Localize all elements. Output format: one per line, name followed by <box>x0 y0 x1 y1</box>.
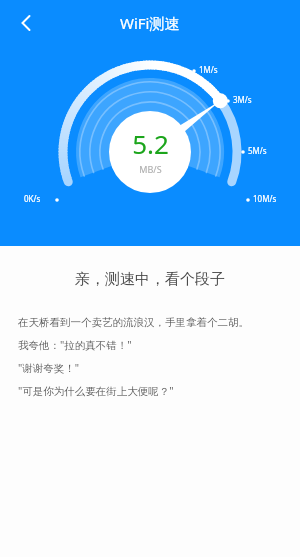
staticText: 3M/s <box>233 94 252 105</box>
staticText: "可是你为什么要在街上大便呢？" <box>18 384 174 398</box>
staticText: 5.2 <box>132 126 169 161</box>
staticText: 1M/s <box>199 64 218 75</box>
staticText: 在天桥看到一个卖艺的流浪汉，手里拿着个二胡。 <box>18 316 249 329</box>
button[interactable]: Back <box>6 3 46 43</box>
staticText: WiFi测速 <box>120 13 180 33</box>
staticText: 我夸他："拉的真不错！" <box>18 338 132 352</box>
staticText: 0K/s <box>24 193 41 204</box>
staticText: "谢谢夸奖！" <box>18 361 80 375</box>
staticText: 10M/s <box>253 193 277 204</box>
staticText: 5M/s <box>248 145 267 156</box>
staticText: MB/S <box>139 163 162 175</box>
staticText: 亲，测速中，看个段子 <box>0 270 300 289</box>
